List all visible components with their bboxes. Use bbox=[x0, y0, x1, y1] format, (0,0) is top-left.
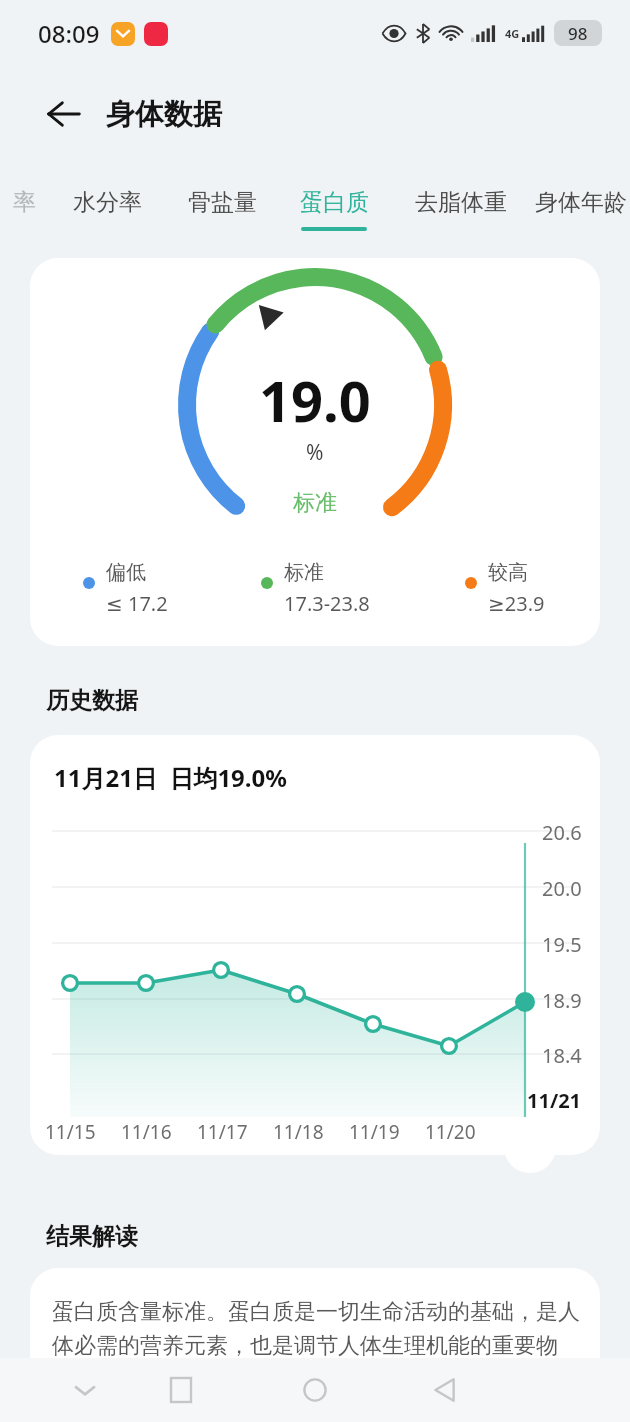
button[interactable]: 蛋白质 bbox=[278, 188, 390, 250]
button[interactable]: Back bbox=[38, 88, 90, 140]
button[interactable]: 19.0 bbox=[30, 258, 600, 646]
staticText: 18.4 bbox=[542, 1042, 582, 1069]
button[interactable]: 蛋白质含量标准。蛋白质是一切生命活动的基础，是人体必需的营养元素，也是调节人体生… bbox=[30, 1268, 600, 1422]
button[interactable]: 11月21日 日均19.0% bbox=[30, 735, 600, 1155]
staticText: % bbox=[306, 438, 324, 467]
button[interactable]: 水分率 bbox=[48, 188, 166, 250]
staticText: 11/17 bbox=[197, 1119, 248, 1145]
staticText: 偏低 bbox=[106, 560, 146, 585]
staticText: 08:09 bbox=[38, 17, 100, 50]
staticText: 11月21日 日均19.0% bbox=[54, 761, 287, 794]
staticText: 4G bbox=[505, 26, 520, 41]
staticText: 水分率 bbox=[73, 188, 142, 217]
staticText: ≤ 17.2 bbox=[106, 590, 168, 617]
staticText: 标准 bbox=[293, 489, 337, 517]
staticText: 11/16 bbox=[121, 1119, 172, 1145]
staticText: 20.6 bbox=[542, 819, 582, 846]
button[interactable]: 骨盐量 bbox=[166, 188, 278, 250]
staticText: 11/18 bbox=[273, 1119, 324, 1145]
button[interactable]: 身体年龄 bbox=[532, 188, 630, 250]
staticText: 11/15 bbox=[45, 1119, 96, 1145]
staticText: 结果解读 bbox=[46, 1222, 138, 1251]
staticText: ≥23.9 bbox=[488, 590, 545, 617]
staticText: 身体数据 bbox=[106, 96, 222, 133]
staticText: 11/21 bbox=[527, 1087, 582, 1114]
staticText: 较高 bbox=[488, 560, 528, 585]
staticText: 19.0 bbox=[259, 362, 371, 438]
staticText: 身体年龄 bbox=[535, 188, 627, 217]
button[interactable]: Hide keyboard bbox=[62, 1367, 108, 1413]
button[interactable]: Expand chart bbox=[504, 1121, 556, 1173]
staticText: 标准 bbox=[284, 560, 324, 585]
button[interactable]: Back bbox=[422, 1367, 468, 1413]
staticText: 11/20 bbox=[425, 1119, 476, 1145]
staticText: 去脂体重 bbox=[415, 188, 507, 217]
button[interactable]: 去脂体重 bbox=[390, 188, 532, 250]
staticText: 19.5 bbox=[542, 931, 582, 958]
staticText: 98 bbox=[568, 22, 588, 45]
staticText: 20.0 bbox=[542, 875, 582, 902]
button[interactable]: Home bbox=[292, 1367, 338, 1413]
button[interactable]: 率 bbox=[0, 188, 48, 250]
staticText: 17.3-23.8 bbox=[284, 590, 370, 617]
staticText: 18.9 bbox=[542, 987, 582, 1014]
button[interactable]: Recents bbox=[158, 1367, 204, 1413]
staticText: 蛋白质含量标准。蛋白质是一切生命活动的基础，是人体必需的营养元素，也是调节人体生… bbox=[52, 1298, 580, 1422]
staticText: 率 bbox=[13, 188, 36, 217]
staticText: 骨盐量 bbox=[188, 188, 257, 217]
staticText: 蛋白质 bbox=[300, 188, 369, 217]
staticText: 历史数据 bbox=[46, 686, 138, 715]
staticText: 11/19 bbox=[349, 1119, 400, 1145]
